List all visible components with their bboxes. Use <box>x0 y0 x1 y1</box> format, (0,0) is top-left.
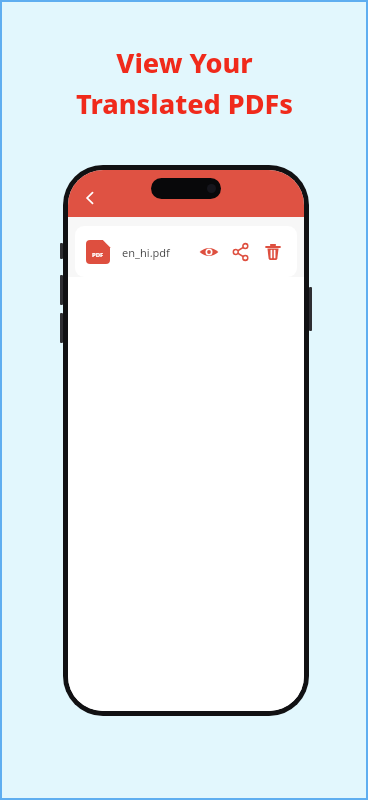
staticText: en_hi.pdf <box>122 245 170 260</box>
button[interactable]: PDF <box>75 226 297 277</box>
staticText: View Your <box>116 44 253 81</box>
button[interactable]: Share <box>228 239 254 265</box>
staticText: PDF <box>92 251 104 259</box>
button[interactable]: View <box>196 239 222 265</box>
button[interactable]: Back <box>76 184 104 212</box>
staticText: Translated PDFs <box>76 85 293 122</box>
button[interactable]: Delete <box>260 239 286 265</box>
